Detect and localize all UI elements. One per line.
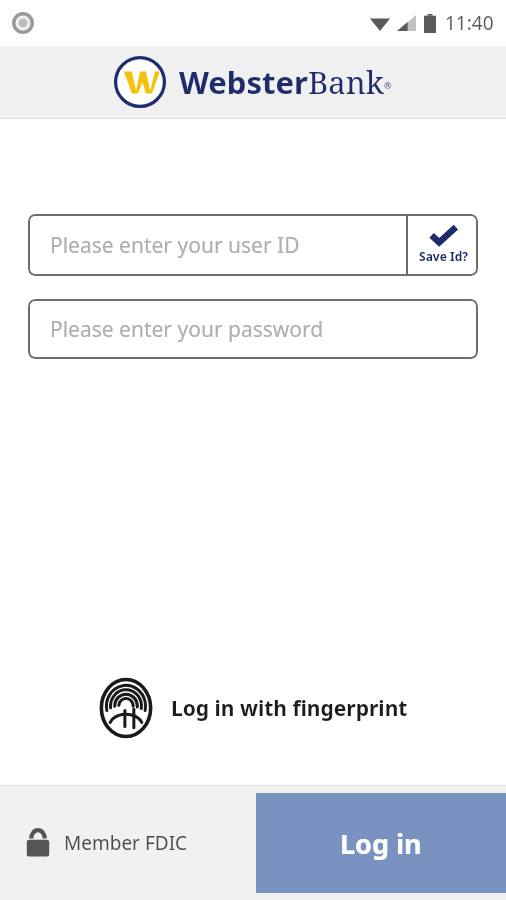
button[interactable]: Please enter your user ID (28, 214, 406, 276)
button[interactable]: Please enter your password (28, 299, 478, 359)
staticText: ® (384, 79, 392, 91)
button[interactable]: Save Id (408, 214, 478, 276)
staticText: Webster (179, 61, 308, 103)
staticText: Log in (340, 825, 422, 862)
button[interactable]: Log in with fingerprint (0, 677, 506, 739)
staticText: Please enter your password (50, 315, 324, 344)
staticText: Bank (308, 61, 384, 103)
staticText: Please enter your user ID (50, 231, 300, 260)
button[interactable]: Member FDIC (24, 827, 188, 859)
staticText: Member FDIC (64, 830, 188, 856)
staticText: Save Id? (419, 248, 468, 264)
button[interactable]: Log in (256, 793, 506, 893)
staticText: 11:40 (445, 10, 494, 36)
staticText: Log in with fingerprint (171, 694, 408, 723)
